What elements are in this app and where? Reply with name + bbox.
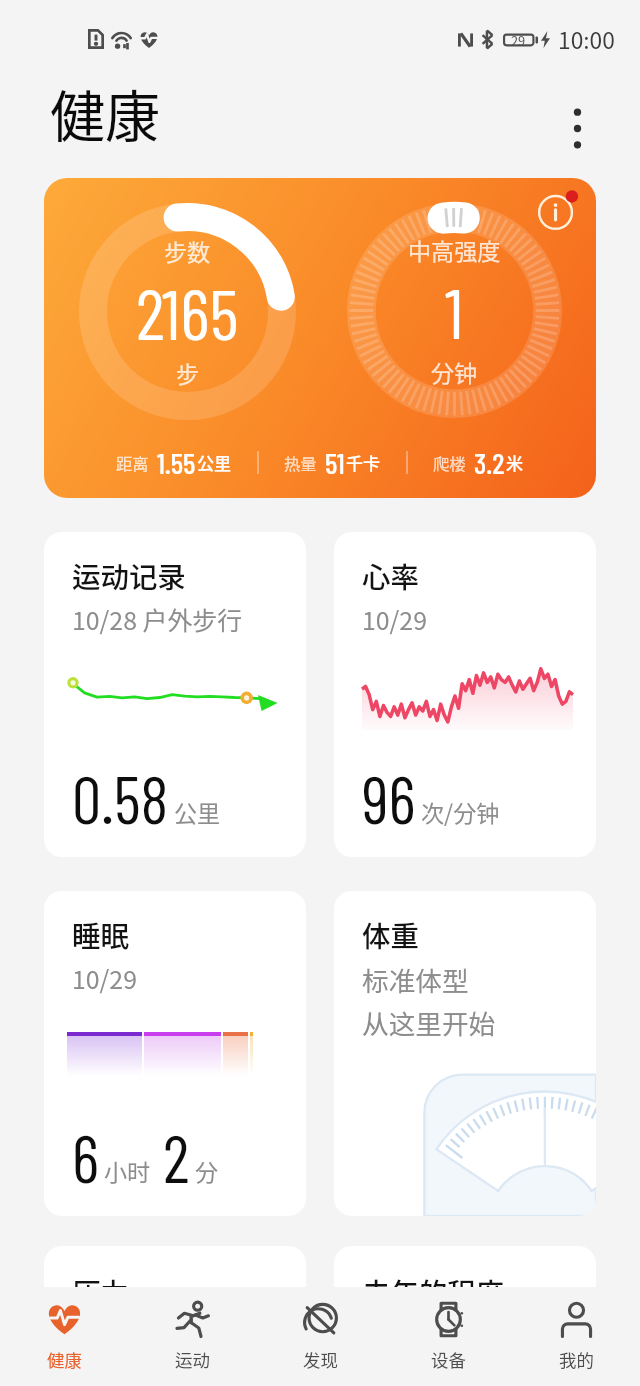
button[interactable]: Info: [44, 178, 596, 498]
staticText: 10/28 户外步行: [72, 601, 243, 637]
staticText: 从这里开始: [362, 1003, 496, 1042]
staticText: 热量: [284, 451, 317, 475]
button[interactable]: 压力: [44, 1246, 306, 1386]
button[interactable]: 去年的程度: [334, 1246, 596, 1386]
staticText: 去年的程度: [362, 1271, 505, 1312]
staticText: 步: [176, 356, 200, 389]
staticText: 米: [506, 450, 524, 475]
staticText: 2: [163, 1117, 190, 1196]
staticText: 运动记录: [72, 555, 186, 596]
button[interactable]: 睡眠: [44, 891, 306, 1216]
staticText: 千卡: [346, 450, 381, 475]
button[interactable]: 心率: [334, 532, 596, 857]
staticText: 6: [72, 1117, 99, 1196]
staticText: 小时: [104, 1154, 151, 1187]
button[interactable]: 运动: [128, 1287, 256, 1386]
staticText: 标准体型: [362, 960, 469, 999]
button[interactable]: 设备: [384, 1287, 512, 1386]
staticText: 步数: [164, 234, 211, 267]
button[interactable]: 运动记录: [44, 532, 306, 857]
staticText: 距离: [116, 451, 149, 475]
staticText: 10:00: [558, 23, 615, 56]
button[interactable]: 我的: [512, 1287, 640, 1386]
staticText: 分钟: [431, 355, 478, 388]
staticText: 51: [325, 445, 345, 480]
staticText: 公里: [197, 450, 232, 475]
staticText: 运动: [175, 1347, 210, 1372]
button[interactable]: More options: [551, 102, 604, 155]
button[interactable]: 健康: [0, 1287, 128, 1386]
staticText: 压力: [72, 1271, 129, 1312]
staticText: 0.58: [72, 758, 169, 837]
staticText: 心率: [362, 555, 419, 596]
staticText: 2165: [136, 269, 239, 354]
button[interactable]: Info: [532, 185, 582, 235]
staticText: 分: [195, 1154, 219, 1187]
button[interactable]: 发现: [256, 1287, 384, 1386]
button[interactable]: 体重: [334, 891, 596, 1216]
staticText: 1.55: [157, 445, 196, 480]
staticText: 我的: [559, 1347, 594, 1372]
staticText: 3.2: [474, 445, 505, 480]
staticText: 爬楼: [433, 451, 466, 475]
staticText: 10/29: [362, 601, 427, 637]
staticText: 体重: [362, 914, 419, 955]
staticText: 10/29: [72, 960, 137, 996]
staticText: 29: [511, 31, 526, 50]
staticText: 健康: [50, 73, 161, 153]
staticText: 96: [362, 758, 416, 837]
staticText: 设备: [431, 1347, 466, 1372]
staticText: 睡眠: [72, 914, 129, 955]
staticText: 中高强度: [408, 233, 501, 266]
staticText: 1: [445, 268, 464, 353]
staticText: 发现: [303, 1347, 338, 1372]
staticText: 健康: [47, 1347, 82, 1372]
staticText: 公里: [174, 795, 221, 828]
staticText: 次/分钟: [421, 795, 500, 828]
